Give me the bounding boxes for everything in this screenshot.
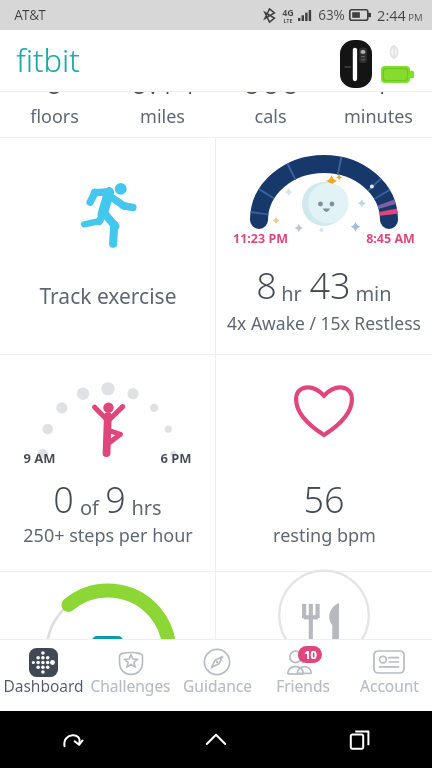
- staticText: 9: [105, 475, 126, 524]
- staticText: Friends: [276, 675, 330, 696]
- button[interactable]: 10: [260, 639, 346, 711]
- staticText: 9 AM: [23, 449, 56, 467]
- staticText: Track exercise: [39, 282, 177, 311]
- staticText: 6 PM: [160, 449, 192, 467]
- staticText: floors: [30, 104, 79, 129]
- staticText: 8:45 AM: [366, 230, 415, 247]
- staticText: 4: [368, 92, 388, 104]
- button[interactable]: Dashboard: [0, 639, 87, 711]
- staticText: Challenges: [90, 675, 171, 696]
- staticText: 43: [309, 261, 351, 310]
- staticText: LTE: [283, 17, 293, 24]
- staticText: AT&T: [14, 6, 46, 24]
- staticText: 4x Awake / 15x Restless: [227, 311, 421, 335]
- button[interactable]: Track exercise: [0, 138, 215, 354]
- staticText: 0.14: [129, 92, 196, 104]
- button[interactable]: 9 AM: [0, 355, 215, 571]
- button[interactable]: [0, 572, 215, 639]
- staticText: 10: [304, 647, 317, 662]
- staticText: fitbit: [16, 39, 80, 81]
- staticText: Account: [360, 675, 419, 696]
- staticText: 11:23 PM: [233, 230, 288, 247]
- staticText: of: [80, 494, 99, 521]
- staticText: resting bpm: [273, 523, 376, 548]
- staticText: Guidance: [183, 675, 252, 696]
- staticText: 250+ steps per hour: [23, 523, 193, 548]
- button[interactable]: [216, 572, 432, 639]
- staticText: Dashboard: [3, 675, 84, 696]
- button[interactable]: Home: [194, 718, 238, 762]
- staticText: min: [355, 280, 392, 307]
- staticText: miles: [140, 104, 185, 129]
- staticText: 8: [256, 261, 277, 310]
- button[interactable]: Back: [50, 718, 94, 762]
- button[interactable]: Account: [346, 639, 432, 711]
- staticText: 0: [44, 92, 64, 104]
- staticText: 63%: [318, 6, 345, 24]
- staticText: 4G: [282, 6, 294, 18]
- staticText: PM: [408, 11, 423, 24]
- staticText: 56: [303, 475, 345, 524]
- button[interactable]: 56: [216, 355, 432, 571]
- staticText: hrs: [131, 494, 162, 521]
- staticText: minutes: [344, 104, 413, 129]
- staticText: 0: [53, 475, 74, 524]
- staticText: cals: [254, 104, 287, 129]
- button[interactable]: Recents: [338, 718, 382, 762]
- button[interactable]: Tracker: [340, 40, 372, 88]
- staticText: hr: [281, 280, 302, 307]
- button[interactable]: Challenges: [87, 639, 174, 711]
- button[interactable]: Guidance: [174, 639, 260, 711]
- staticText: 2:44: [377, 5, 406, 25]
- button[interactable]: 11:23 PM: [216, 138, 432, 354]
- staticText: 666: [241, 92, 300, 104]
